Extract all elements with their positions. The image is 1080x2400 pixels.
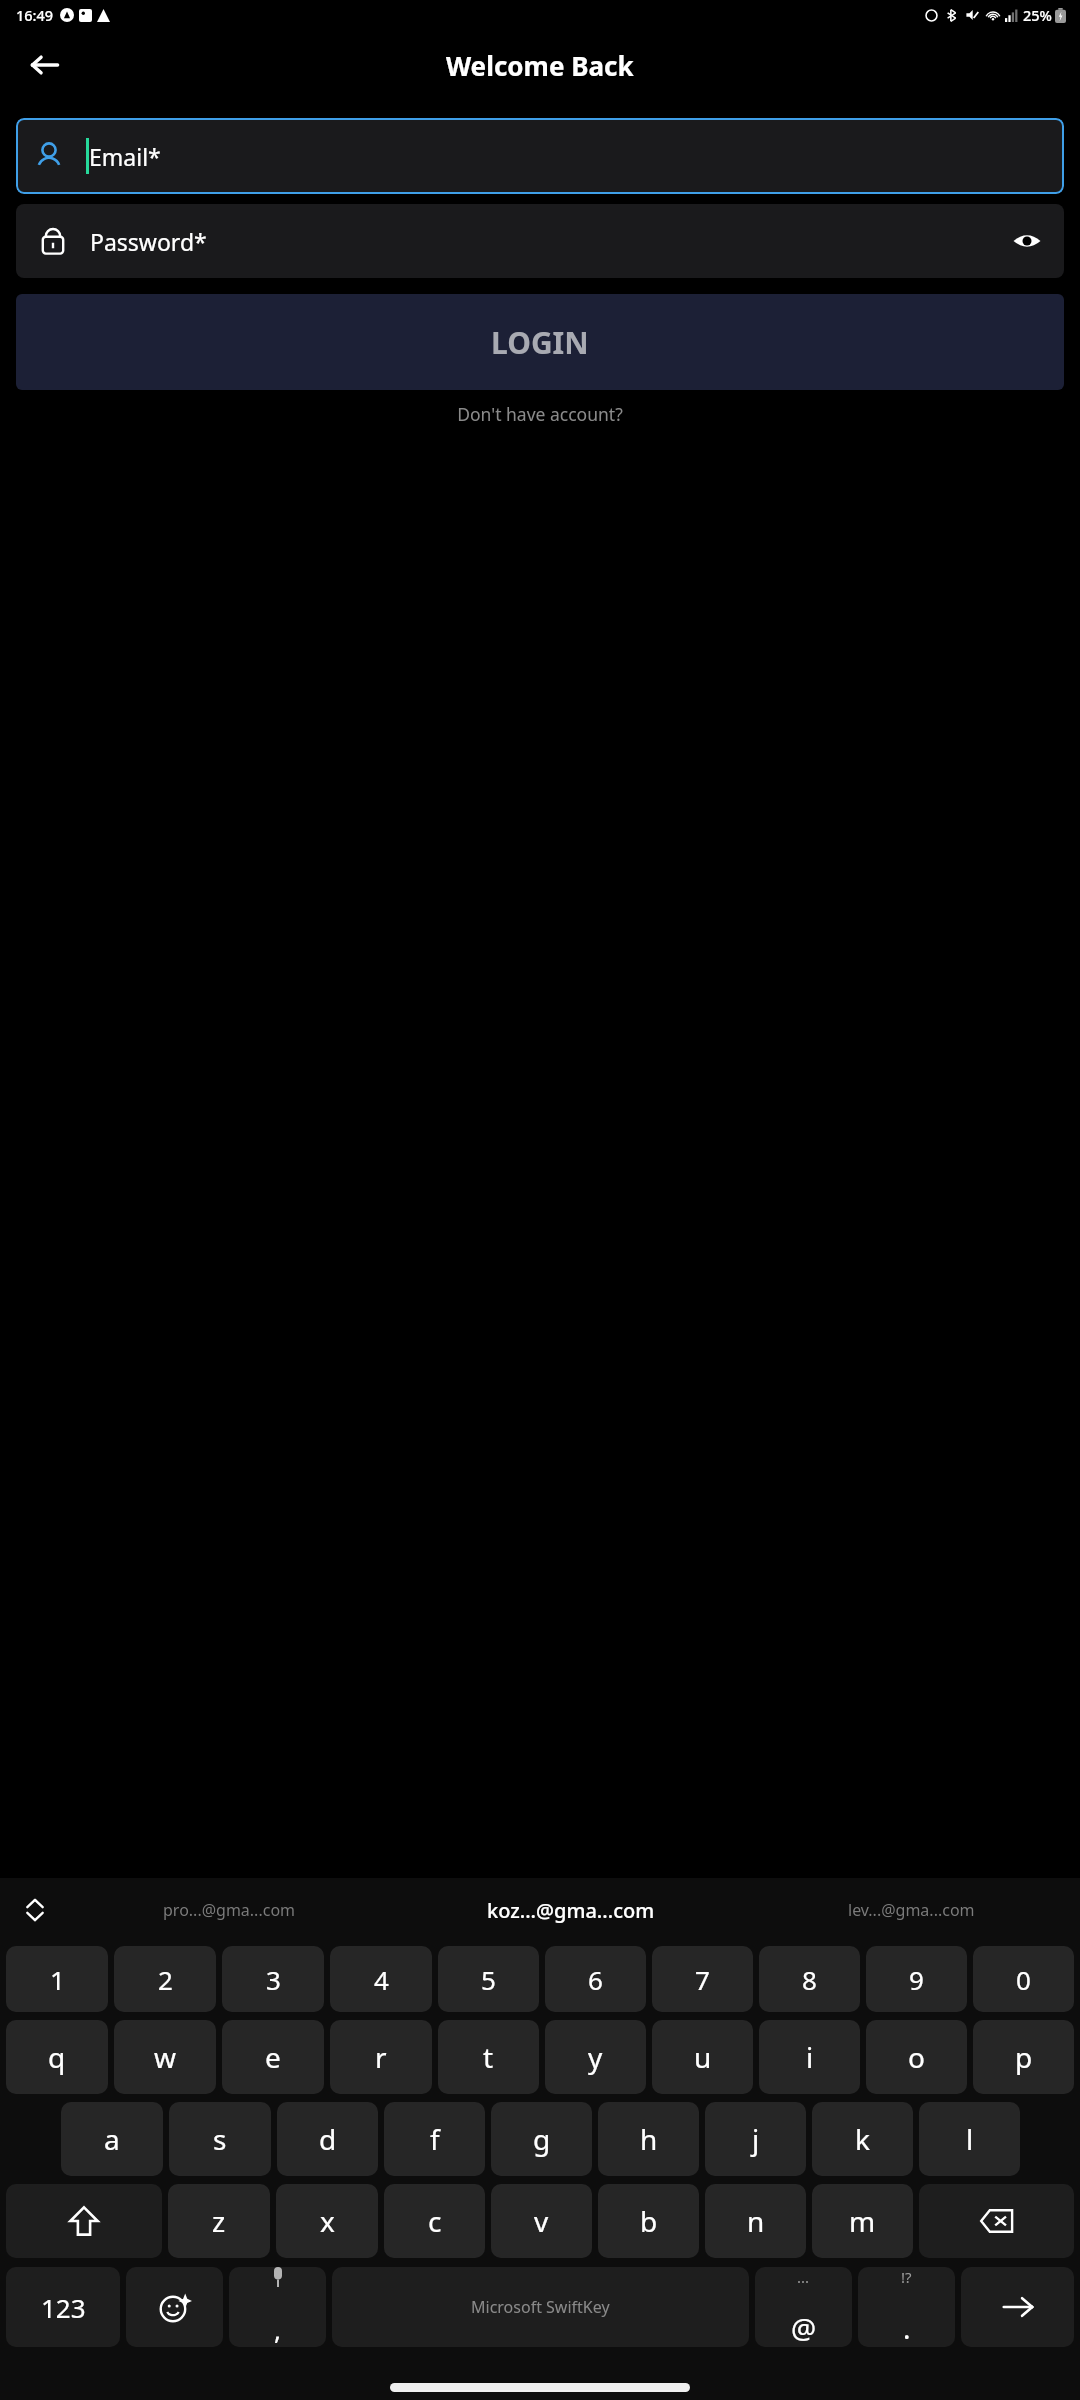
staticText: l (966, 2120, 974, 2158)
staticText: Email* (89, 141, 161, 172)
staticText: Welcome Back (446, 48, 634, 83)
staticText: x (320, 2202, 335, 2240)
button[interactable]: y (545, 2020, 646, 2094)
button[interactable]: q (6, 2020, 108, 2094)
button[interactable]: Shift (6, 2184, 162, 2258)
button[interactable]: Backspace (919, 2184, 1074, 2258)
button[interactable]: s (169, 2102, 271, 2176)
button[interactable]: 8 (759, 1946, 860, 2012)
staticText: s (213, 2120, 227, 2158)
staticText: . (903, 2309, 911, 2347)
staticText: e (265, 2038, 281, 2076)
staticText: Password* (90, 226, 207, 257)
button[interactable]: LOGIN (16, 294, 1064, 390)
button[interactable]: Enter (961, 2267, 1074, 2347)
button[interactable]: i (759, 2020, 860, 2094)
staticText: ... (797, 2267, 810, 2287)
staticText: u (694, 2038, 712, 2076)
staticText: q (48, 2038, 66, 2076)
button[interactable]: 1 (6, 1946, 108, 2012)
staticText: 9 (909, 1962, 924, 1997)
staticText: j (752, 2120, 760, 2158)
button[interactable]: koz...@gma...com (388, 1878, 753, 1942)
button[interactable]: 9 (866, 1946, 967, 2012)
staticText: 0 (1016, 1962, 1031, 1997)
staticText: 8 (802, 1962, 817, 1997)
button[interactable]: Don't have account? (0, 402, 1080, 426)
button[interactable]: z (168, 2184, 270, 2258)
staticText: @ (791, 2309, 817, 2347)
staticText: 5 (481, 1962, 496, 1997)
button[interactable]: Back (20, 40, 70, 90)
staticText: a (104, 2120, 120, 2158)
button[interactable]: e (222, 2020, 324, 2094)
staticText: LOGIN (491, 322, 589, 363)
button[interactable]: b (598, 2184, 699, 2258)
staticText: 123 (41, 2290, 86, 2325)
button[interactable]: Emoji (126, 2267, 223, 2347)
button[interactable]: j (705, 2102, 806, 2176)
button[interactable]: 4 (330, 1946, 432, 2012)
button[interactable]: Password* (16, 204, 1064, 278)
button[interactable]: Email* (16, 118, 1064, 194)
button[interactable]: Expand suggestions (0, 1878, 70, 1942)
staticText: , (274, 2312, 281, 2347)
button[interactable]: x (276, 2184, 378, 2258)
staticText: k (855, 2120, 870, 2158)
button[interactable]: g (491, 2102, 592, 2176)
button[interactable]: h (598, 2102, 699, 2176)
staticText: h (640, 2120, 658, 2158)
button[interactable]: 5 (438, 1946, 539, 2012)
staticText: n (747, 2202, 765, 2240)
button[interactable]: !? (858, 2267, 955, 2347)
button[interactable]: o (866, 2020, 967, 2094)
staticText: Microsoft SwiftKey (471, 2296, 610, 2318)
button[interactable]: r (330, 2020, 432, 2094)
button[interactable]: 7 (652, 1946, 753, 2012)
button[interactable]: lev...@gma...com (753, 1878, 1070, 1942)
button[interactable]: k (812, 2102, 913, 2176)
staticText: o (908, 2038, 925, 2076)
button[interactable]: u (652, 2020, 753, 2094)
staticText: y (588, 2038, 603, 2076)
button[interactable]: ... (755, 2267, 852, 2347)
button[interactable]: d (277, 2102, 378, 2176)
button[interactable]: l (919, 2102, 1020, 2176)
button[interactable]: m (812, 2184, 913, 2258)
button[interactable]: 0 (973, 1946, 1074, 2012)
button[interactable]: 3 (222, 1946, 324, 2012)
staticText: 1 (50, 1962, 65, 1997)
staticText: koz...@gma...com (487, 1897, 655, 1924)
staticText: d (319, 2120, 337, 2158)
staticText: p (1015, 2038, 1033, 2076)
staticText: f (430, 2120, 440, 2158)
staticText: g (533, 2120, 551, 2158)
staticText: pro...@gma...com (163, 1899, 296, 1921)
button[interactable]: pro...@gma...com (70, 1878, 388, 1942)
staticText: r (375, 2038, 387, 2076)
button[interactable]: 6 (545, 1946, 646, 2012)
staticText: i (806, 2038, 814, 2076)
button[interactable]: Show password (998, 212, 1056, 270)
button[interactable]: Voice input (229, 2267, 326, 2347)
button[interactable]: 2 (114, 1946, 216, 2012)
button[interactable]: p (973, 2020, 1074, 2094)
button[interactable]: a (61, 2102, 163, 2176)
staticText: m (849, 2202, 876, 2240)
staticText: v (534, 2202, 549, 2240)
button[interactable]: t (438, 2020, 539, 2094)
button[interactable]: n (705, 2184, 806, 2258)
staticText: 3 (266, 1962, 281, 1997)
button[interactable]: 123 (6, 2267, 120, 2347)
button[interactable]: f (384, 2102, 485, 2176)
staticText: 6 (588, 1962, 603, 1997)
staticText: 7 (695, 1962, 710, 1997)
button[interactable]: w (114, 2020, 216, 2094)
button[interactable]: Microsoft SwiftKey (332, 2267, 749, 2347)
button[interactable]: c (384, 2184, 485, 2258)
staticText: z (212, 2202, 226, 2240)
staticText: 25% (1023, 5, 1052, 25)
staticText: w (154, 2038, 177, 2076)
staticText: b (640, 2202, 658, 2240)
button[interactable]: v (491, 2184, 592, 2258)
